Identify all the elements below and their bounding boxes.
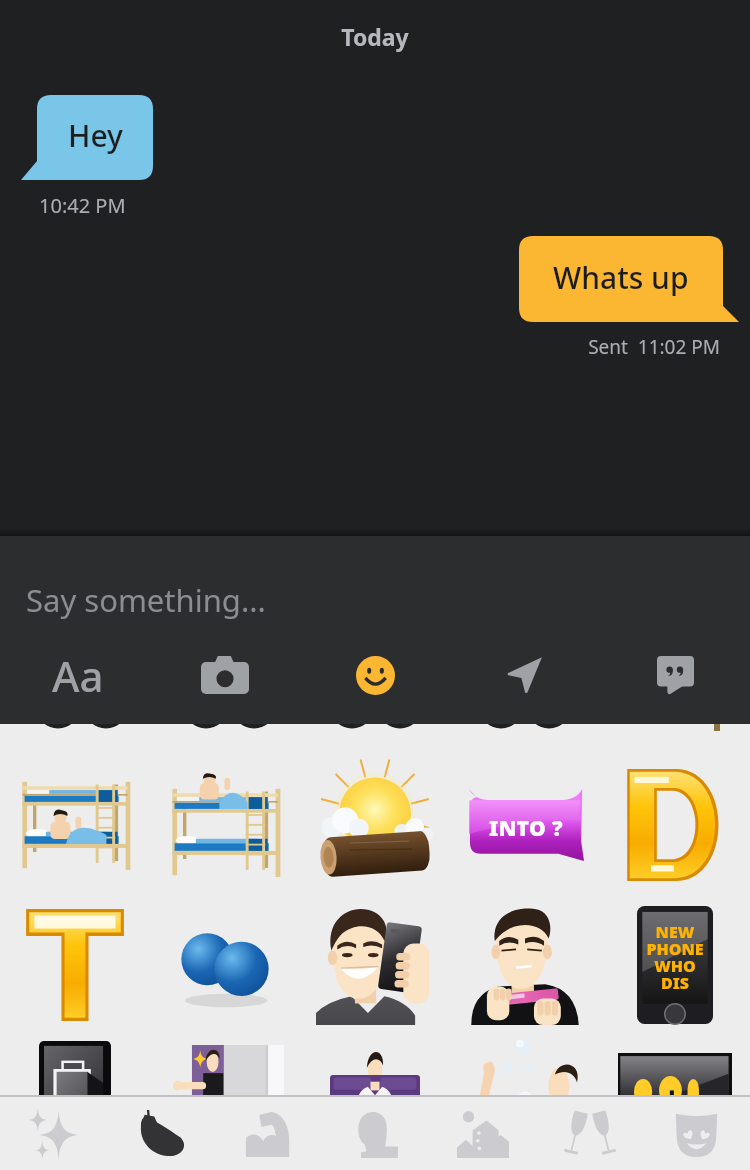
staticText: INTO ? — [489, 814, 563, 843]
staticText: Say something... — [26, 579, 266, 621]
staticText: Whats up — [553, 257, 689, 298]
button[interactable]: Eggplant — [108, 1097, 215, 1170]
button[interactable] — [0, 1035, 150, 1115]
button[interactable] — [450, 1035, 600, 1115]
staticText: Today — [0, 21, 750, 52]
button[interactable] — [300, 755, 450, 895]
button[interactable] — [450, 895, 600, 1035]
staticText: Aa — [52, 647, 104, 704]
staticText: Sent 11:02 PM — [0, 334, 720, 360]
button[interactable] — [150, 1035, 300, 1115]
button[interactable] — [600, 755, 750, 895]
button[interactable]: Places — [429, 1097, 536, 1170]
button[interactable]: Text format — [0, 637, 150, 713]
button[interactable]: Sparkle — [0, 1097, 108, 1170]
button[interactable]: Quote message — [600, 637, 750, 713]
button[interactable]: Face — [643, 1097, 750, 1170]
button[interactable] — [150, 755, 300, 895]
button[interactable]: Person — [322, 1097, 429, 1170]
button[interactable] — [300, 1035, 450, 1115]
staticText: Hey — [68, 115, 123, 156]
button[interactable] — [0, 895, 150, 1035]
staticText: 10:42 PM — [39, 192, 126, 219]
button[interactable] — [150, 895, 300, 1035]
button[interactable]: NEW PHONE WHO DIS — [600, 895, 750, 1035]
staticText: NEW PHONE WHO DIS — [646, 921, 704, 994]
button[interactable]: Flex — [215, 1097, 322, 1170]
button[interactable] — [600, 1035, 750, 1115]
button[interactable]: Cheers — [536, 1097, 643, 1170]
button[interactable]: INTO ? — [450, 755, 600, 895]
button[interactable] — [300, 895, 450, 1035]
button[interactable]: Camera — [150, 637, 300, 713]
button[interactable]: Stickers — [300, 637, 450, 713]
button[interactable] — [0, 755, 150, 895]
button[interactable]: Send location — [450, 637, 600, 713]
